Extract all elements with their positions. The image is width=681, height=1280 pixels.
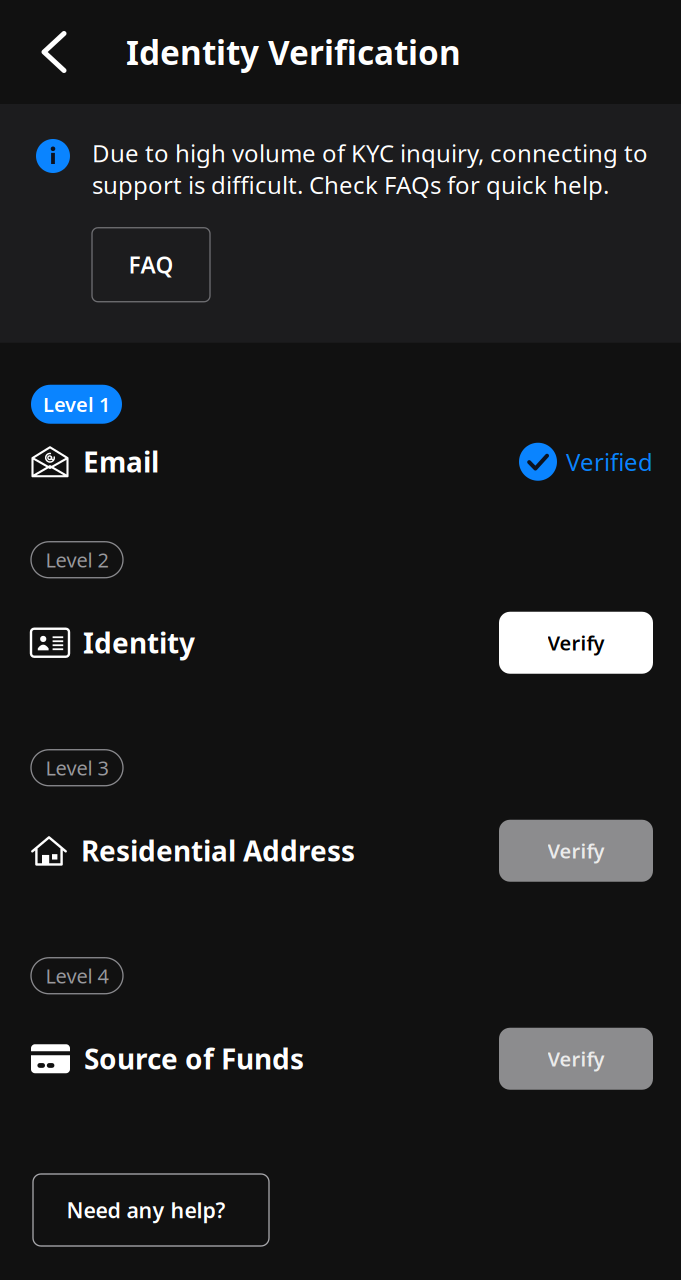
staticText: Email xyxy=(83,443,159,480)
staticText: Verify xyxy=(547,837,604,864)
staticText: Level 4 xyxy=(45,962,108,989)
staticText: Level 1 xyxy=(43,391,110,418)
staticText: Verify xyxy=(547,1045,604,1072)
staticText: Identity Verification xyxy=(126,30,461,74)
staticText: Verified xyxy=(566,446,653,478)
button[interactable]: Verify xyxy=(499,1028,653,1090)
staticText: Identity xyxy=(83,624,195,661)
staticText: Need any help? xyxy=(66,1196,225,1224)
staticText: Residential Address xyxy=(81,832,355,869)
button[interactable]: Verify xyxy=(499,820,653,882)
button[interactable]: Need any help? xyxy=(33,1174,269,1246)
staticText: Level 2 xyxy=(45,546,108,573)
staticText: Verify xyxy=(547,629,604,656)
staticText: Source of Funds xyxy=(84,1040,304,1077)
button[interactable]: FAQ xyxy=(92,228,210,302)
staticText: FAQ xyxy=(128,250,173,280)
button[interactable]: Back xyxy=(21,19,87,85)
staticText: Due to high volume of KYC inquiry, conne… xyxy=(92,137,648,201)
button[interactable]: Verify xyxy=(499,612,653,674)
staticText: Level 3 xyxy=(45,754,108,781)
